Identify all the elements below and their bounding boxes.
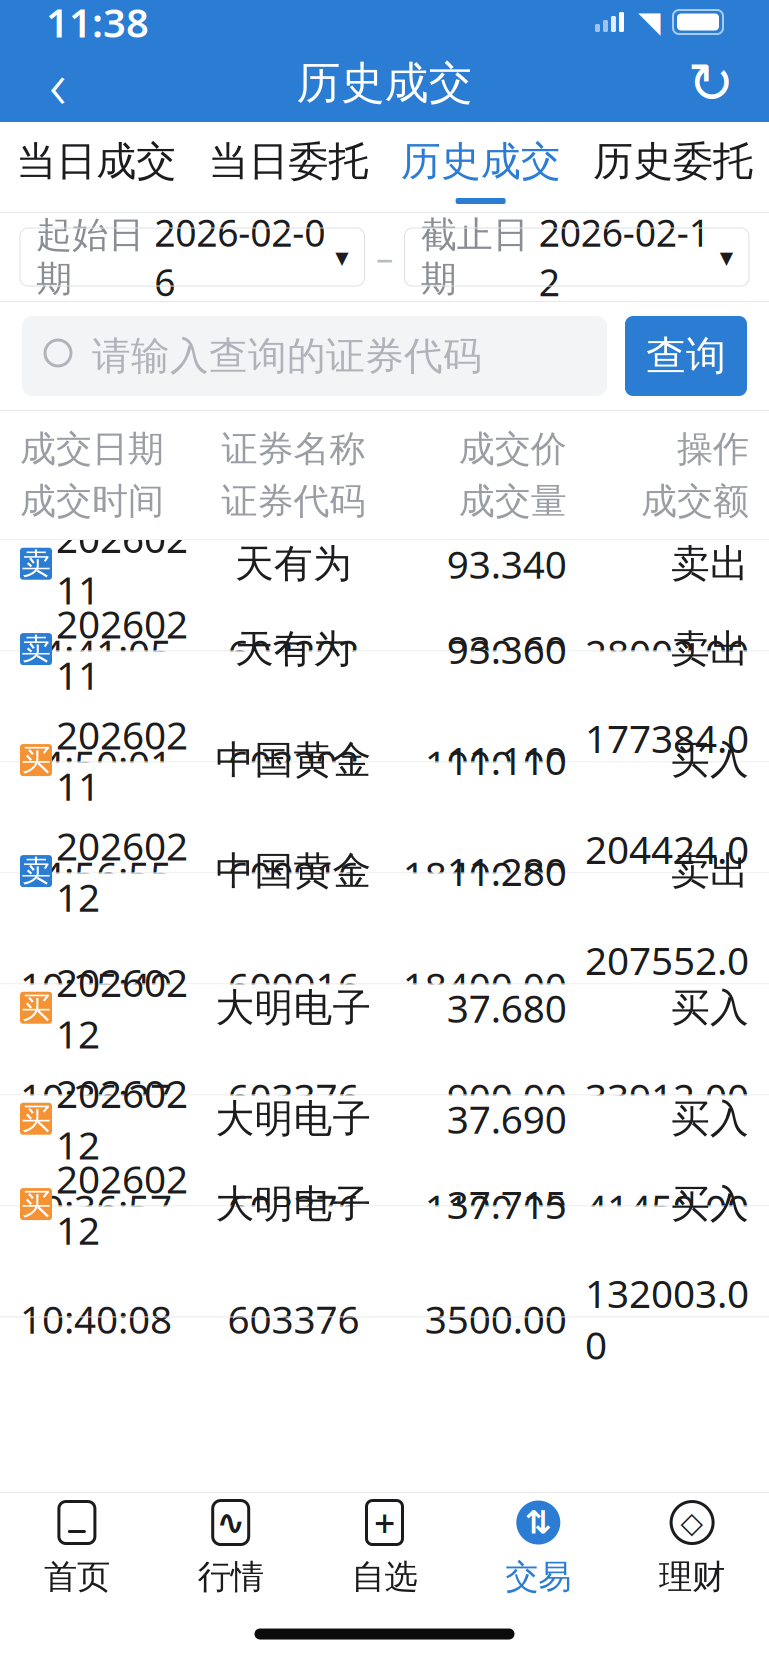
- button[interactable]: 卖: [0, 540, 769, 650]
- button[interactable]: 首页: [0, 1493, 154, 1603]
- staticText: 成交额: [641, 479, 749, 523]
- staticText: 14:50:01: [20, 738, 172, 789]
- button[interactable]: 返回: [18, 51, 98, 115]
- staticText: ▾: [720, 242, 733, 272]
- staticText: 603202: [227, 738, 359, 789]
- staticText: 中国黄金: [215, 736, 371, 784]
- staticText: 历史成交: [296, 56, 472, 110]
- staticText: 14:56:55: [20, 849, 172, 900]
- staticText: 2026-02-12: [539, 207, 710, 307]
- staticText: 操作: [677, 427, 749, 471]
- button[interactable]: ∿: [154, 1493, 308, 1603]
- staticText: 1900.00: [425, 738, 567, 789]
- button[interactable]: 卖: [0, 873, 769, 983]
- staticText: 证券代码: [221, 479, 365, 523]
- button[interactable]: 截止日期: [404, 228, 749, 286]
- staticText: 买入: [671, 1180, 749, 1228]
- staticText: 买入: [671, 1095, 749, 1142]
- staticText: 20260212: [56, 956, 188, 1059]
- staticText: 93.360: [447, 623, 567, 675]
- staticText: 20260212: [56, 1153, 188, 1255]
- button[interactable]: 起始日期: [20, 228, 364, 286]
- staticText: 买: [21, 1101, 50, 1137]
- staticText: 11.280: [447, 845, 567, 897]
- staticText: 18400.00: [403, 849, 567, 900]
- staticText: 大明电子: [215, 984, 371, 1031]
- button[interactable]: 买: [0, 1095, 769, 1205]
- button[interactable]: 当日委托: [192, 122, 384, 212]
- staticText: 132003.00: [585, 1267, 749, 1370]
- staticText: 10:25:49: [20, 960, 172, 1011]
- staticText: 历史成交: [401, 137, 561, 186]
- staticText: 37.690: [447, 1093, 567, 1144]
- staticText: 603376: [227, 1182, 359, 1233]
- button[interactable]: 历史成交: [384, 122, 577, 212]
- button[interactable]: 卖: [0, 651, 769, 761]
- button[interactable]: 买: [0, 1206, 769, 1316]
- button[interactable]: 买: [0, 984, 769, 1094]
- staticText: 603202: [227, 627, 359, 678]
- staticText: 行情: [198, 1556, 264, 1597]
- staticText: 买: [21, 1186, 50, 1222]
- staticText: 成交量: [459, 479, 567, 523]
- button[interactable]: 买: [0, 762, 769, 872]
- staticText: 成交价: [459, 427, 567, 471]
- staticText: 41459.00: [585, 1182, 749, 1233]
- staticText: 3500.00: [425, 1293, 567, 1344]
- staticText: 历史委托: [593, 137, 753, 186]
- staticText: 93.340: [447, 538, 567, 589]
- staticText: 成交日期: [20, 427, 164, 471]
- staticText: 603376: [227, 1071, 359, 1122]
- button[interactable]: 查询: [625, 316, 747, 396]
- staticText: 成交时间: [20, 479, 164, 523]
- staticText: ▾: [335, 242, 348, 272]
- staticText: ‹: [49, 39, 67, 127]
- staticText: 天有为: [235, 625, 352, 673]
- staticText: 查询: [646, 331, 726, 380]
- staticText: 11:38: [46, 0, 149, 48]
- staticText: ◇: [681, 1506, 704, 1539]
- staticText: 买: [21, 990, 50, 1026]
- staticText: 37.680: [447, 982, 567, 1033]
- staticText: 900.00: [447, 1071, 567, 1122]
- staticText: 14:41:05: [20, 627, 172, 678]
- staticText: 28002.00: [585, 627, 749, 678]
- staticText: 请输入查询的证券代码: [92, 332, 482, 380]
- staticText: 1100.00: [425, 1182, 567, 1233]
- staticText: 卖出: [671, 540, 749, 587]
- staticText: ⇅: [525, 1504, 552, 1541]
- staticText: 卖出: [671, 847, 749, 895]
- button[interactable]: 当日成交: [0, 122, 192, 212]
- staticText: 20260211: [56, 512, 188, 615]
- staticText: 2026-02-06: [154, 207, 325, 307]
- button[interactable]: ⇅: [461, 1493, 615, 1603]
- staticText: 交易: [505, 1556, 571, 1597]
- staticText: 证券名称: [221, 427, 365, 471]
- staticText: 卖: [21, 853, 50, 889]
- staticText: 买入: [671, 736, 749, 784]
- staticText: 37.715: [447, 1178, 567, 1230]
- staticText: 大明电子: [215, 1180, 371, 1228]
- staticText: 207552.00: [585, 934, 749, 1037]
- staticText: 18400.00: [403, 960, 567, 1011]
- staticText: 33912.00: [585, 1071, 749, 1122]
- staticText: 首页: [44, 1556, 110, 1597]
- staticText: ↻: [687, 51, 734, 115]
- staticText: 当日委托: [208, 137, 368, 186]
- staticText: 起始日期: [36, 213, 144, 301]
- staticText: 中国黄金: [215, 847, 371, 895]
- button[interactable]: +: [308, 1493, 461, 1603]
- staticText: 大明电子: [215, 1095, 371, 1142]
- staticText: 177384.00: [585, 712, 749, 815]
- staticText: –: [376, 234, 393, 280]
- staticText: 买: [21, 742, 50, 778]
- button[interactable]: 刷新: [671, 51, 751, 115]
- staticText: 10:40:08: [20, 1293, 172, 1344]
- staticText: 20260212: [56, 820, 188, 922]
- button[interactable]: 历史委托: [577, 122, 769, 212]
- button[interactable]: ◇: [615, 1493, 769, 1603]
- staticText: ∿: [216, 1503, 245, 1542]
- staticText: 卖: [21, 546, 50, 582]
- staticText: 自选: [351, 1556, 417, 1597]
- staticText: 卖出: [671, 625, 749, 673]
